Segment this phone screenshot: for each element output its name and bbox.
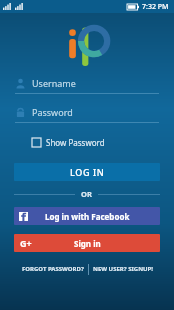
staticText: Log in with Facebook [45,211,130,222]
staticText: Show Password [46,137,105,148]
button[interactable]: Log in with Facebook [14,207,160,225]
staticText: OR [81,189,92,199]
staticText: 7:32 PM [142,2,169,12]
staticText: Sign in [74,238,101,249]
button[interactable]: LOG IN [14,163,160,181]
button[interactable]: Password [15,106,159,123]
button[interactable]: Show Password [30,135,107,150]
button[interactable]: G+ [14,234,160,252]
staticText: G+ [20,237,32,249]
staticText: NEW USER? SIGNUP! [93,265,153,273]
button[interactable]: NEW USER? SIGNUP! [89,263,157,275]
staticText: Username [32,77,76,89]
staticText: FORGOT PASSWORD? [22,265,84,273]
staticText: Password [32,106,73,118]
button[interactable]: Username [15,77,159,94]
staticText: LOG IN [70,166,105,178]
button[interactable]: FORGOT PASSWORD? [18,263,88,275]
